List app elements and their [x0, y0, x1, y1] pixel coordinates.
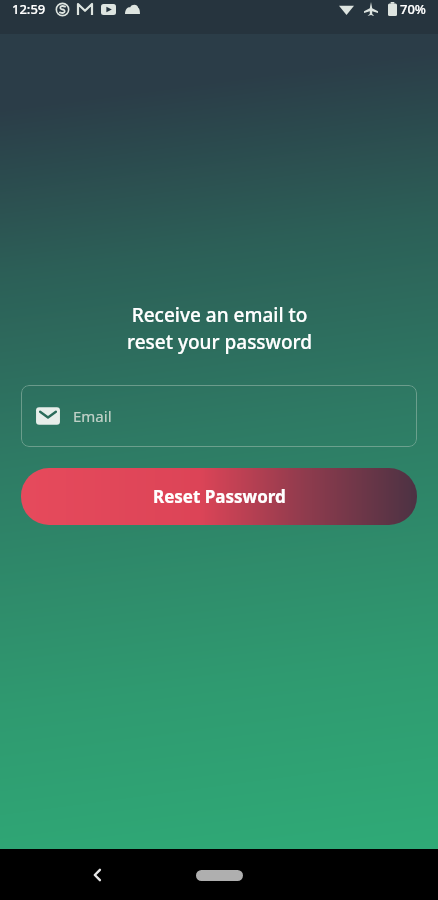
staticText: 12:59 — [12, 0, 46, 18]
staticText: Reset Password — [153, 485, 286, 508]
staticText: 70% — [400, 0, 426, 18]
button[interactable]: Home — [189, 862, 249, 888]
button[interactable]: Reset Password — [21, 468, 417, 525]
staticText: Receive an email to reset your password — [127, 302, 312, 355]
button[interactable]: Back — [78, 855, 118, 895]
button[interactable]: Email — [21, 385, 417, 447]
staticText: Email — [73, 406, 112, 426]
